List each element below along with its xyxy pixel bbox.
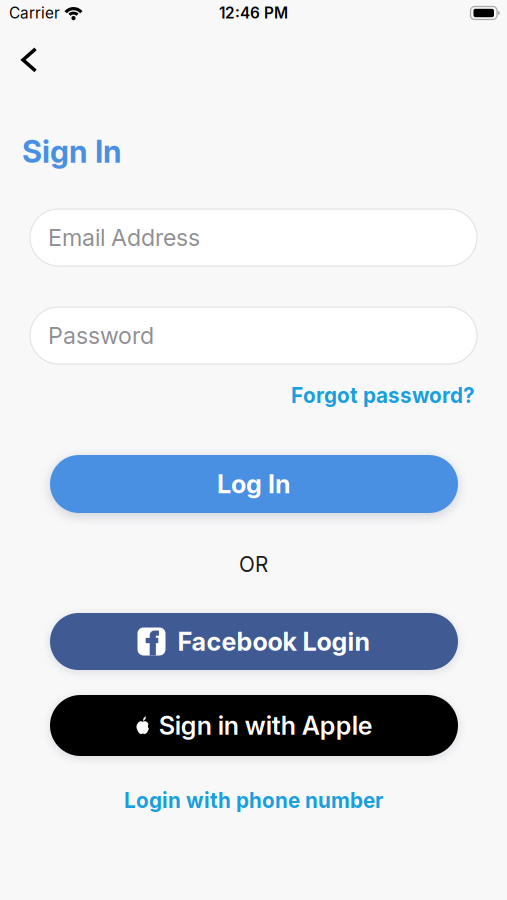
staticText: 12:46 PM	[219, 4, 288, 22]
button[interactable]: Log In	[50, 455, 458, 513]
button[interactable]: Sign in with Apple	[50, 695, 458, 756]
button[interactable]: Login with phone number	[124, 788, 383, 813]
button[interactable]	[13, 39, 45, 81]
staticText: Sign In	[22, 133, 122, 170]
staticText: Carrier	[9, 4, 60, 22]
staticText: Login with phone number	[124, 788, 383, 813]
staticText: Facebook Login	[177, 626, 370, 657]
button[interactable]: Forgot password?	[291, 383, 475, 408]
staticText: Password	[48, 321, 154, 350]
staticText: Email Address	[48, 223, 200, 252]
staticText: Log In	[217, 469, 291, 499]
staticText: OR	[239, 552, 268, 577]
button[interactable]: Email Address	[30, 209, 477, 266]
staticText: Sign in with Apple	[159, 710, 373, 741]
staticText: Forgot password?	[291, 383, 475, 408]
button[interactable]: Facebook Login	[50, 613, 458, 670]
button[interactable]: Password	[30, 307, 477, 364]
